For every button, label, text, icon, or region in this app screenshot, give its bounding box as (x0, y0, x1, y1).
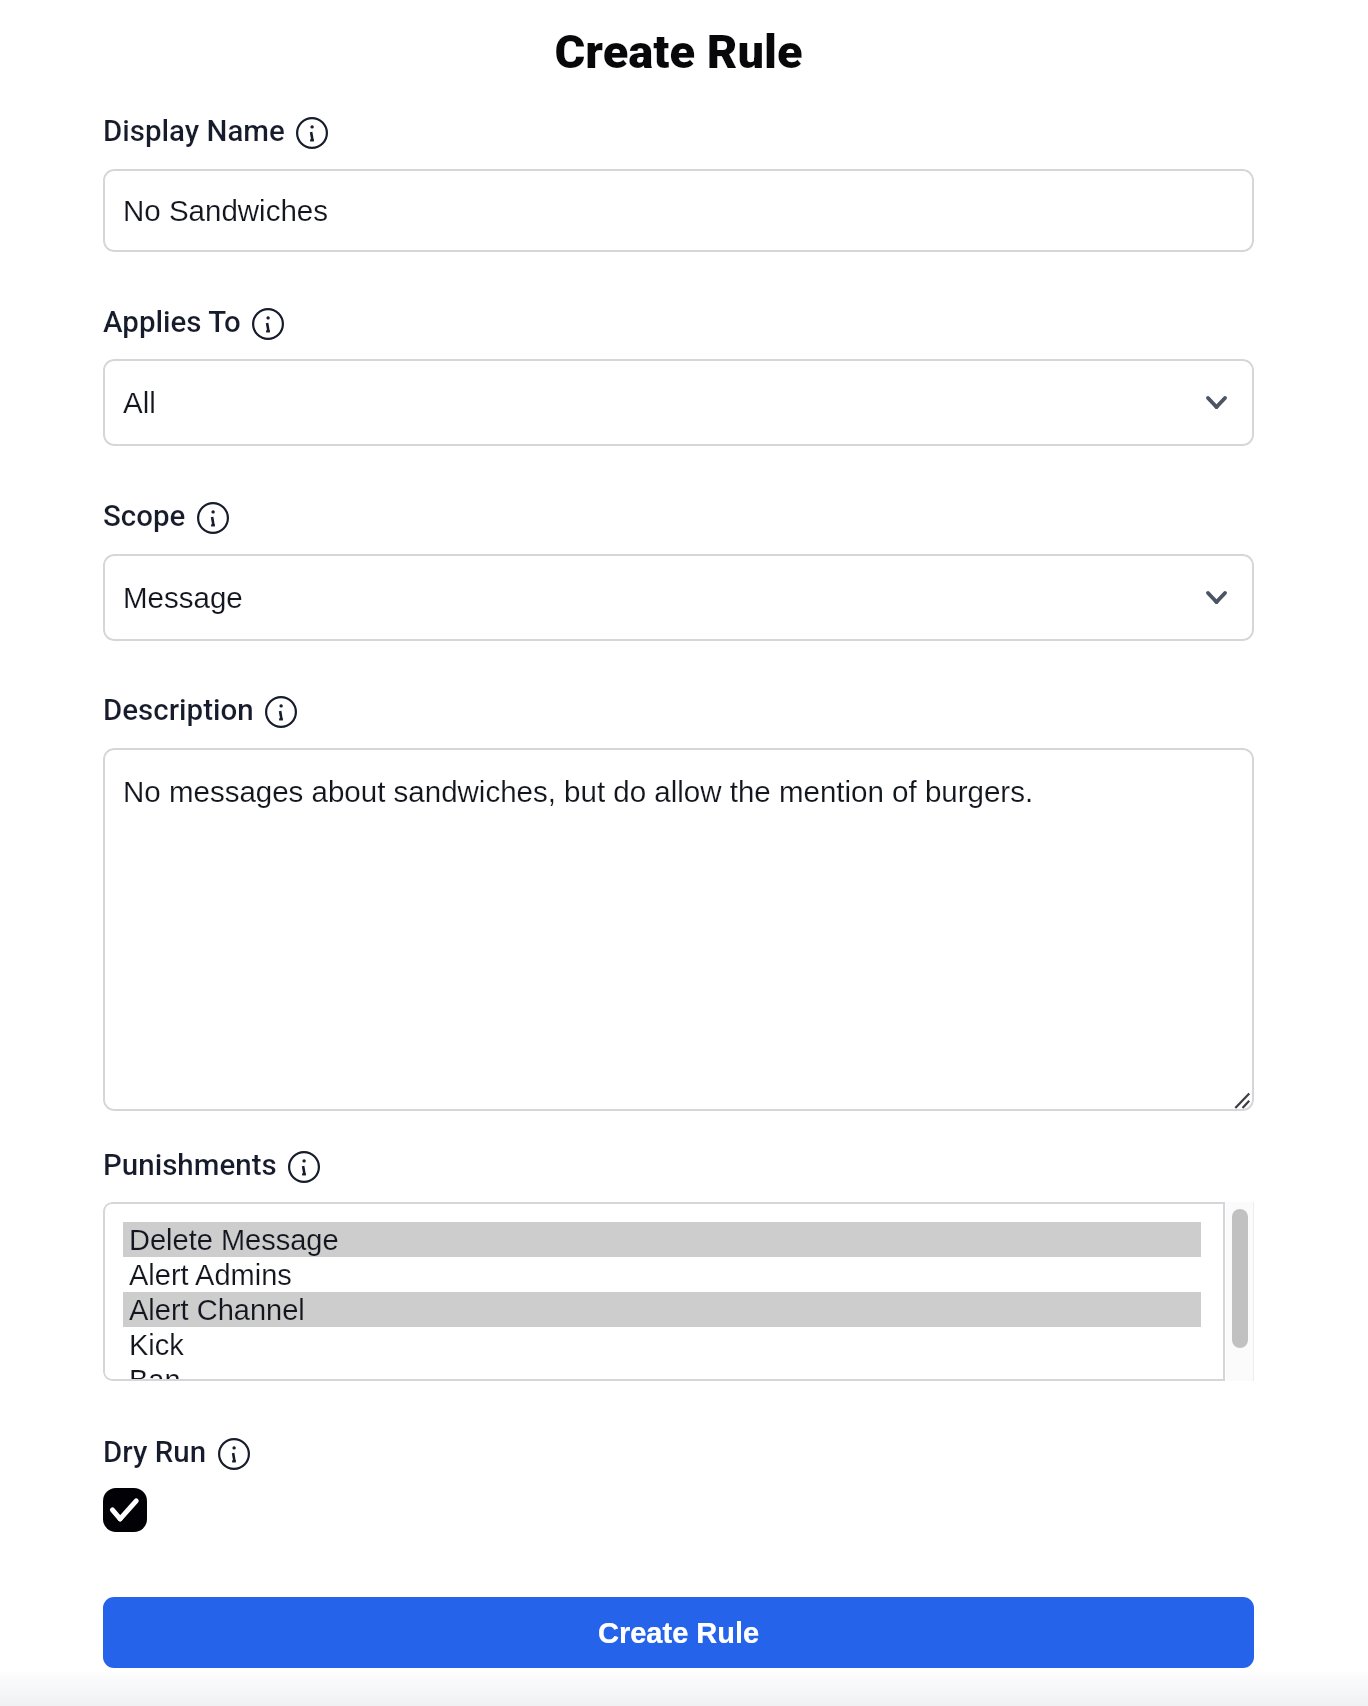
button[interactable]: Dry Run checkbox (103, 1488, 147, 1532)
staticText: No Sandwiches (123, 194, 328, 227)
staticText: Alert Admins (129, 1259, 292, 1291)
staticText: Message (123, 581, 243, 614)
button[interactable]: Alert Admins (123, 1257, 1201, 1292)
staticText: All (123, 386, 156, 419)
staticText: Create Rule (103, 24, 1254, 79)
staticText: Dry Run (103, 1435, 207, 1470)
staticText: Delete Message (129, 1224, 339, 1256)
staticText: Scope (103, 499, 186, 534)
staticText: Applies To (103, 305, 241, 340)
button[interactable]: No messages about sandwiches, but do all… (103, 748, 1254, 1111)
staticText: Create Rule (598, 1617, 760, 1649)
staticText: No messages about sandwiches, but do all… (123, 775, 1034, 808)
button[interactable]: Kick (123, 1327, 1201, 1362)
staticText: Kick (129, 1329, 184, 1361)
button[interactable]: Create Rule (103, 1597, 1254, 1668)
button[interactable]: Ban (123, 1362, 1201, 1381)
staticText: Display Name (103, 114, 285, 149)
staticText: Alert Channel (129, 1294, 305, 1326)
staticText: Punishments (103, 1148, 277, 1183)
button[interactable]: No Sandwiches (103, 169, 1254, 252)
button[interactable]: All (103, 359, 1254, 446)
staticText: Description (103, 693, 254, 728)
staticText: Ban (129, 1364, 181, 1381)
button[interactable]: Message (103, 554, 1254, 641)
button[interactable]: Delete Message (123, 1222, 1201, 1257)
button[interactable]: Alert Channel (123, 1292, 1201, 1327)
